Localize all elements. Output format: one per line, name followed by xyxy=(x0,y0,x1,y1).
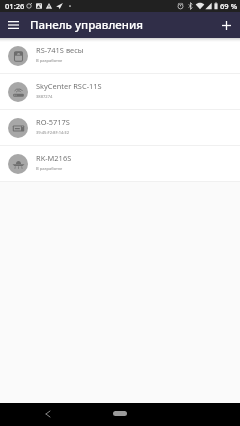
button[interactable]: RS-741S весы xyxy=(0,38,240,73)
button[interactable]: RK-M216S xyxy=(0,146,240,181)
staticText: 01:26 xyxy=(5,1,25,11)
staticText: В разработке xyxy=(36,166,63,172)
button[interactable]: Back xyxy=(40,406,56,422)
staticText: 69 % xyxy=(220,1,238,11)
button[interactable]: Open navigation menu xyxy=(2,14,24,36)
staticText: В разработке xyxy=(36,58,63,64)
button[interactable]: Add device xyxy=(215,14,237,36)
staticText: RK-M216S xyxy=(36,153,72,163)
staticText: RO-5717S xyxy=(36,117,70,127)
staticText: Панель управления xyxy=(30,17,143,33)
staticText: SkyCenter RSC-11S xyxy=(36,81,102,91)
staticText: RS-741S весы xyxy=(36,45,84,55)
staticText: 39:45:F2:8F:14:E2 xyxy=(36,130,70,136)
button[interactable]: SkyCenter RSC-11S xyxy=(0,74,240,109)
staticText: 3887274 xyxy=(36,94,53,100)
button[interactable]: Home xyxy=(113,411,127,416)
button[interactable]: RO-5717S xyxy=(0,110,240,145)
